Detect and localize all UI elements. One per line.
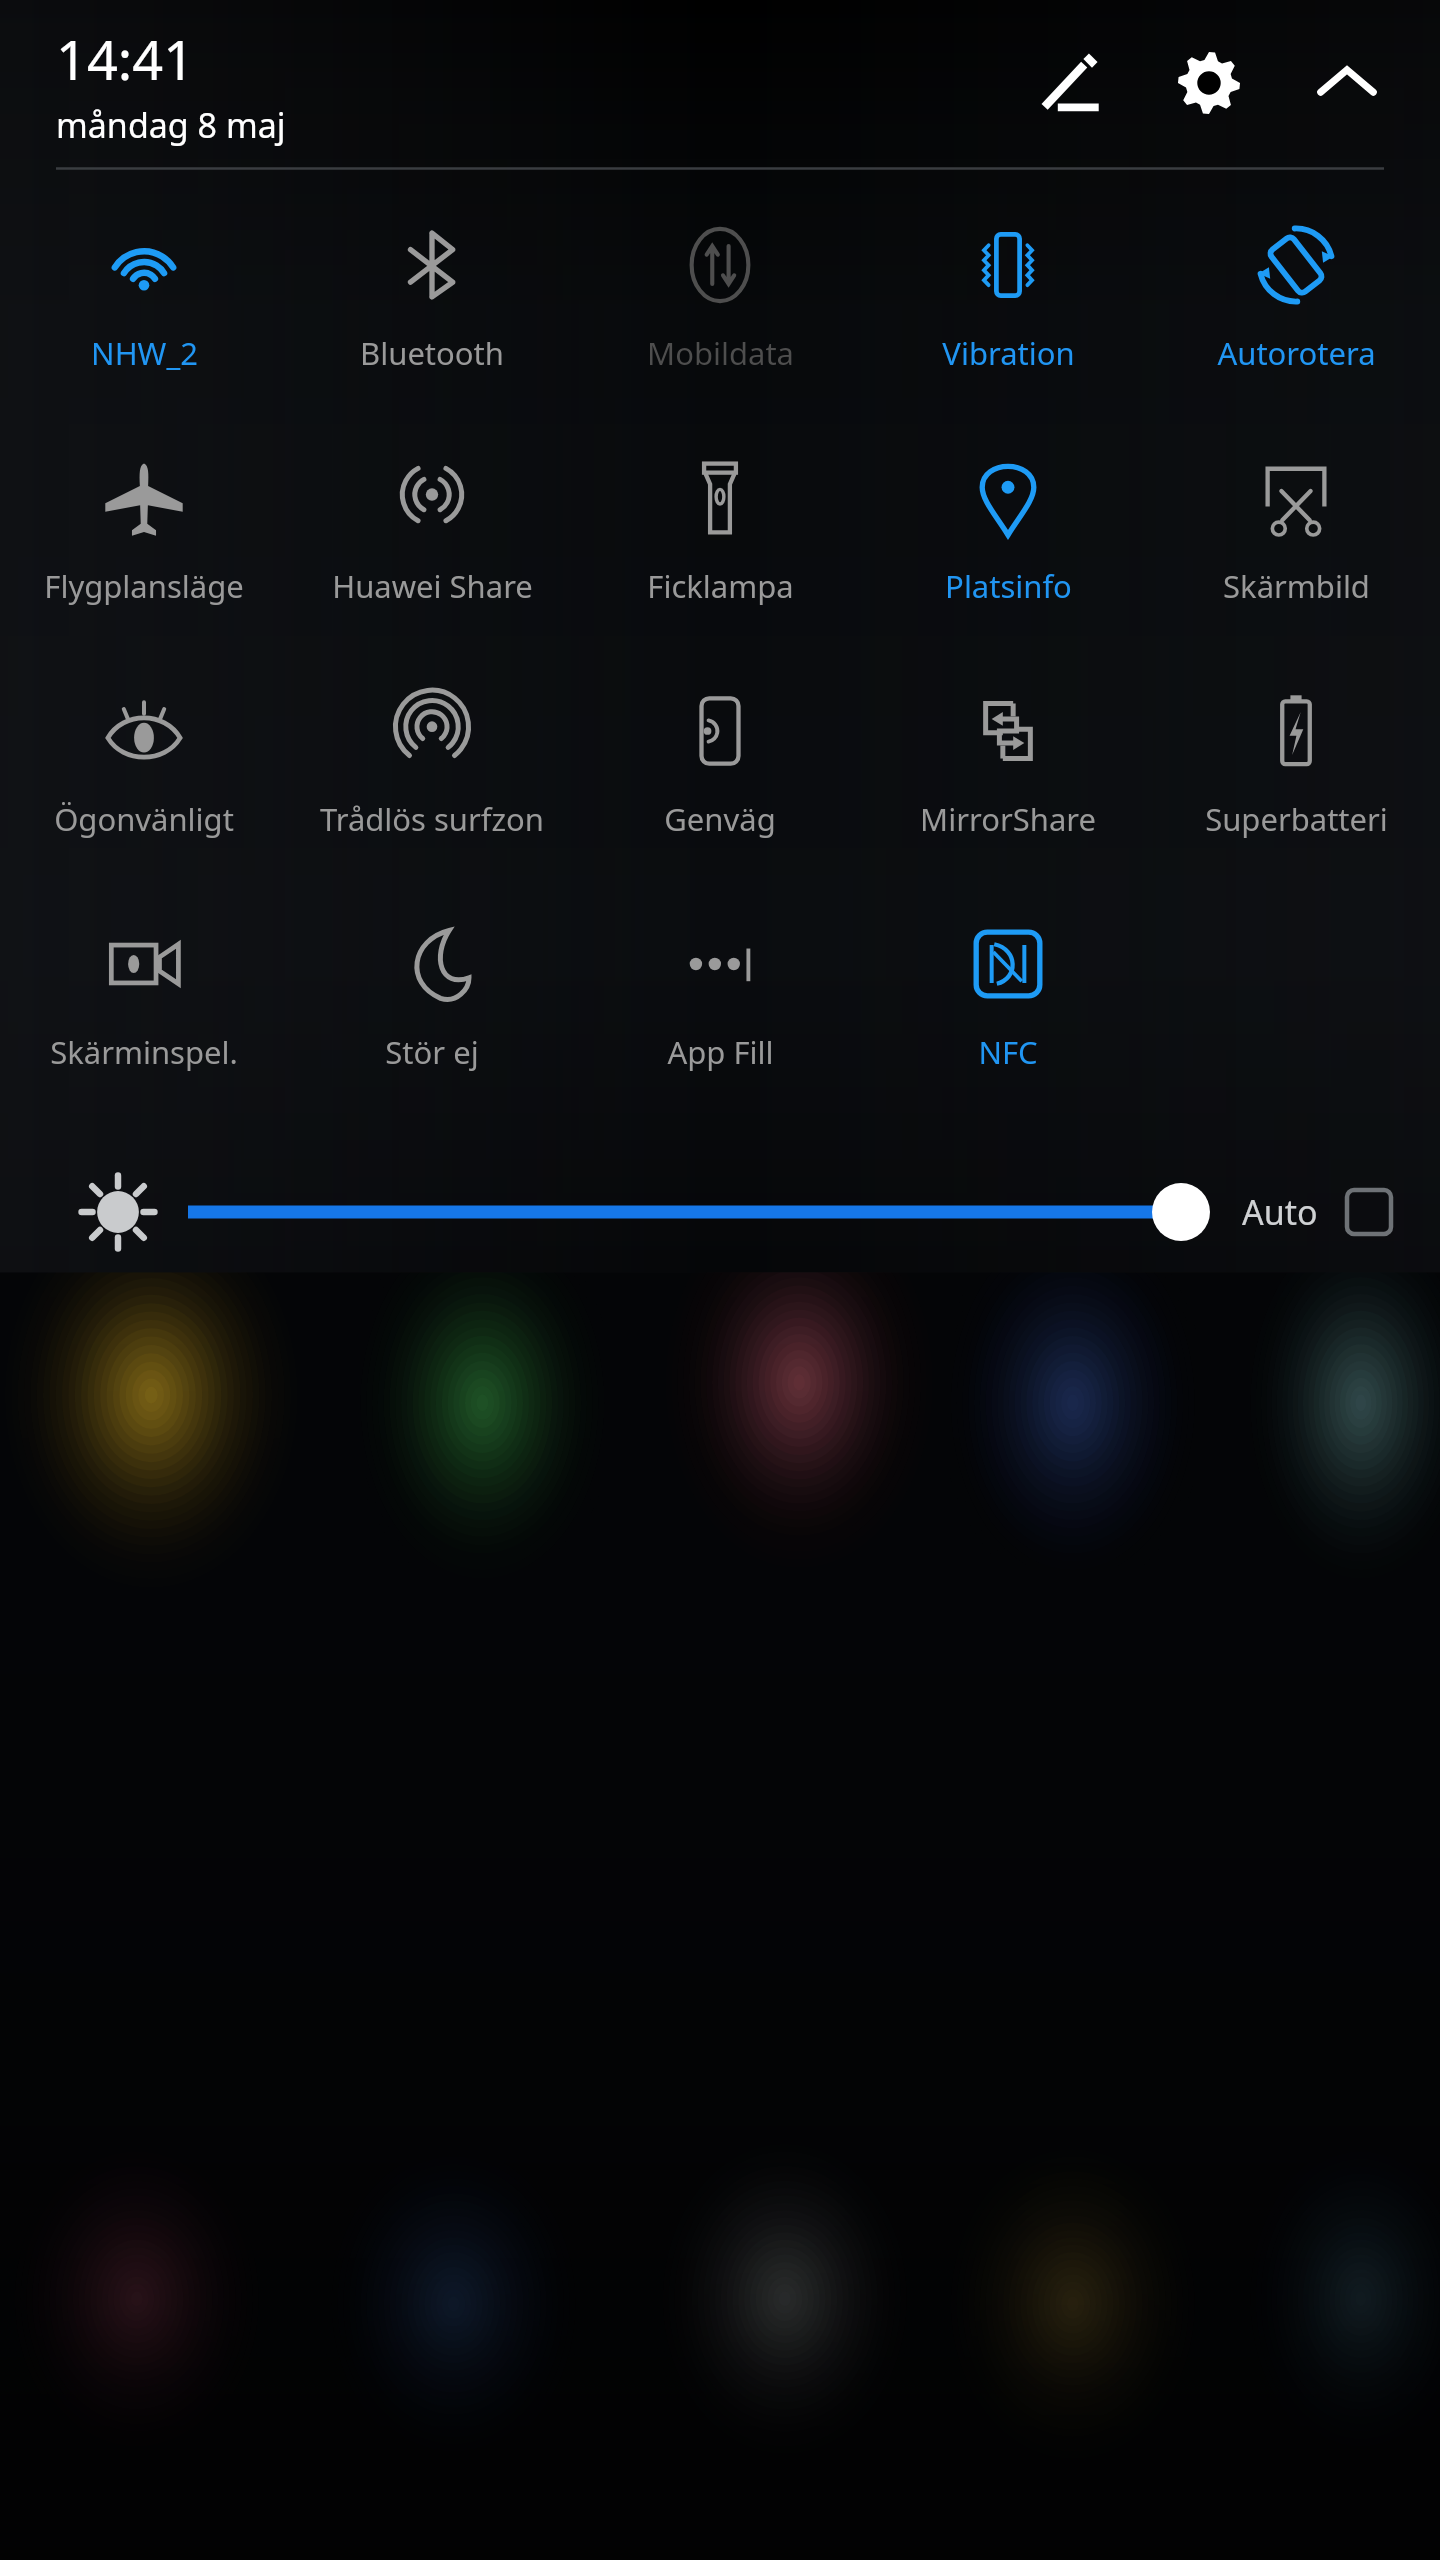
button[interactable]: Platsinfo [864,429,1152,662]
button[interactable]: Ficklampa [576,429,864,662]
button[interactable]: MirrorShare [864,662,1152,895]
staticText: NFC [978,1031,1038,1073]
staticText: Vibration [942,332,1075,374]
staticText: Platsinfo [945,565,1072,607]
staticText: Genväg [664,798,776,840]
button[interactable]: Vibration [864,196,1152,429]
staticText: Skärmbild [1223,565,1370,607]
staticText: 14:41 [56,22,195,96]
button[interactable]: Autorotera [1152,196,1440,429]
staticText: Auto [1242,1189,1318,1235]
button[interactable]: Collapse [1294,30,1400,136]
button[interactable]: Mobildata [576,196,864,429]
button[interactable]: Bluetooth [288,196,576,429]
button[interactable]: Settings [1156,30,1262,136]
button[interactable]: Trådlös surfzon [288,662,576,895]
staticText: Trådlös surfzon [320,798,544,840]
staticText: Mobildata [647,332,794,374]
staticText: Huawei Share [332,565,533,607]
button[interactable]: Edit [1018,30,1124,136]
staticText: Stör ej [385,1031,479,1073]
button[interactable]: Skärminspel. [0,895,288,1128]
staticText: MirrorShare [920,798,1096,840]
button[interactable]: Auto [1242,1167,1394,1257]
staticText: Autorotera [1217,332,1376,374]
staticText: Superbatteri [1205,798,1388,840]
button[interactable]: NFC [864,895,1152,1128]
staticText: Skärminspel. [50,1031,238,1073]
button[interactable]: Genväg [576,662,864,895]
staticText: måndag 8 maj [56,102,286,148]
button[interactable]: Brightness [188,1167,1212,1257]
button[interactable]: Superbatteri [1152,662,1440,895]
button[interactable]: Stör ej [288,895,576,1128]
staticText: App Fill [667,1031,774,1073]
button[interactable]: Huawei Share [288,429,576,662]
staticText: Ögonvänligt [54,798,234,840]
staticText: Flygplansläge [44,565,244,607]
button[interactable]: App Fill [576,895,864,1128]
button[interactable]: Ögonvänligt [0,662,288,895]
button[interactable]: NHW_2 [0,196,288,429]
staticText: NHW_2 [91,332,198,374]
staticText: Ficklampa [647,565,794,607]
staticText: Bluetooth [360,332,504,374]
button[interactable]: Flygplansläge [0,429,288,662]
button[interactable]: Skärmbild [1152,429,1440,662]
